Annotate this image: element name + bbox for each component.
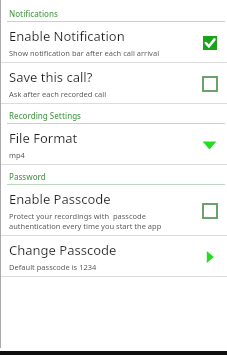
staticText: Protect your recordings with passcode [9, 211, 146, 221]
staticText: Enable Notification [9, 27, 125, 45]
staticText: Change Passcode [9, 241, 117, 259]
button[interactable]: Save this call? [1, 63, 227, 103]
staticText: Password [9, 171, 46, 182]
staticText: Show notification bar after each call ar… [9, 48, 160, 58]
other: Choose file format [202, 139, 217, 150]
button[interactable]: Enable Passcode [1, 185, 227, 235]
staticText: authentication every time you start the … [9, 221, 162, 231]
staticText: Default passcode is 1234 [9, 262, 97, 272]
button[interactable]: Change Passcode [1, 236, 227, 276]
staticText: Enable Passcode [9, 190, 111, 208]
staticText: Save this call? [9, 68, 93, 86]
staticText: Notifications [9, 8, 58, 19]
other: Change passcode [206, 251, 214, 263]
button[interactable]: File Format [1, 124, 227, 164]
staticText: File Format [9, 129, 78, 147]
staticText: Ask after each recorded call [9, 89, 107, 99]
staticText: Recording Settings [9, 110, 82, 121]
staticText: mp4 [9, 150, 25, 160]
button[interactable]: Enable Notification [1, 22, 227, 62]
